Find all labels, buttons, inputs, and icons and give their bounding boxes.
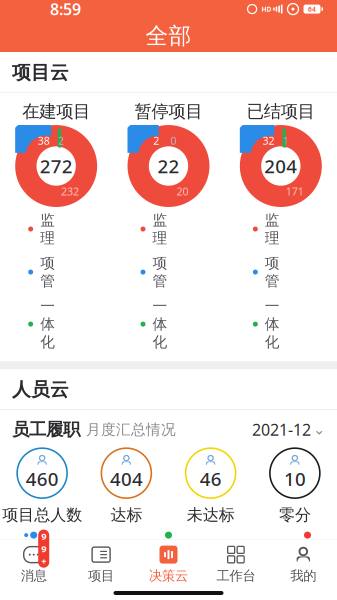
- staticText: 月度汇总情况: [86, 420, 176, 438]
- staticText: 全员平均贡献值: [12, 555, 145, 578]
- staticText: ⌄: [313, 421, 325, 438]
- staticText: 404: [110, 466, 143, 491]
- staticText: 2: [58, 133, 64, 148]
- staticText: 0: [170, 133, 176, 148]
- staticText: 20: [176, 184, 188, 199]
- staticText: 项目: [88, 568, 114, 584]
- staticText: 64: [308, 5, 316, 14]
- staticText: 未达标: [187, 505, 235, 525]
- staticText: 监理: [40, 211, 55, 247]
- staticText: 达标: [110, 505, 142, 525]
- staticText: 99+: [41, 530, 46, 567]
- staticText: 460: [26, 466, 59, 491]
- staticText: 在建项目: [22, 101, 90, 122]
- staticText: 32: [262, 133, 274, 148]
- staticText: HD: [262, 5, 272, 14]
- staticText: 2: [153, 133, 159, 148]
- staticText: 消息: [21, 568, 47, 584]
- staticText: 已结项目: [247, 101, 315, 122]
- button[interactable]: 决策云: [135, 540, 202, 588]
- button[interactable]: 工作台: [202, 540, 270, 588]
- staticText: 项目总人数: [2, 505, 82, 525]
- staticText: 监理: [265, 211, 280, 247]
- staticText: 工作台: [216, 568, 255, 584]
- staticText: 38: [38, 133, 50, 148]
- button[interactable]: 10: [253, 446, 337, 525]
- staticText: 项管: [40, 254, 55, 290]
- staticText: 79.80: [206, 591, 228, 600]
- staticText: 171: [286, 184, 304, 199]
- staticText: 零分: [279, 505, 311, 525]
- staticText: 员工履职: [12, 419, 80, 440]
- button[interactable]: 2021-12: [252, 419, 325, 440]
- button[interactable]: 404: [84, 446, 168, 525]
- staticText: 78.10: [182, 593, 204, 600]
- staticText: 全部: [145, 22, 191, 50]
- staticText: 272: [40, 154, 73, 178]
- staticText: 10: [284, 466, 306, 491]
- staticText: 人员云: [12, 378, 69, 401]
- button[interactable]: 99+: [0, 540, 67, 588]
- staticText: 我的: [290, 568, 316, 584]
- staticText: 77.30: [133, 594, 155, 600]
- staticText: 2021-12: [252, 419, 311, 440]
- staticText: 项管: [265, 254, 280, 290]
- staticText: 监理: [152, 211, 167, 247]
- staticText: 项目云: [12, 61, 69, 84]
- staticText: 78.40: [109, 593, 131, 600]
- button[interactable]: 项目: [67, 540, 135, 588]
- button[interactable]: 我的: [270, 540, 337, 588]
- staticText: 一体化: [265, 297, 280, 351]
- staticText: 1: [283, 133, 289, 148]
- staticText: 8:59: [50, 0, 81, 20]
- staticText: 详情: [293, 556, 325, 576]
- staticText: 77.20: [158, 594, 180, 600]
- button[interactable]: 详情: [293, 556, 325, 576]
- button[interactable]: 46: [168, 446, 253, 525]
- staticText: 暂停项目: [134, 101, 202, 122]
- staticText: 一体化: [40, 297, 55, 351]
- staticText: 22: [157, 154, 179, 178]
- staticText: 决策云: [149, 568, 188, 584]
- staticText: 一体化: [152, 297, 167, 351]
- staticText: 232: [61, 184, 79, 199]
- staticText: 204: [264, 154, 297, 178]
- button[interactable]: 460: [0, 446, 84, 525]
- staticText: 项管: [152, 254, 167, 290]
- staticText: 46: [200, 466, 222, 491]
